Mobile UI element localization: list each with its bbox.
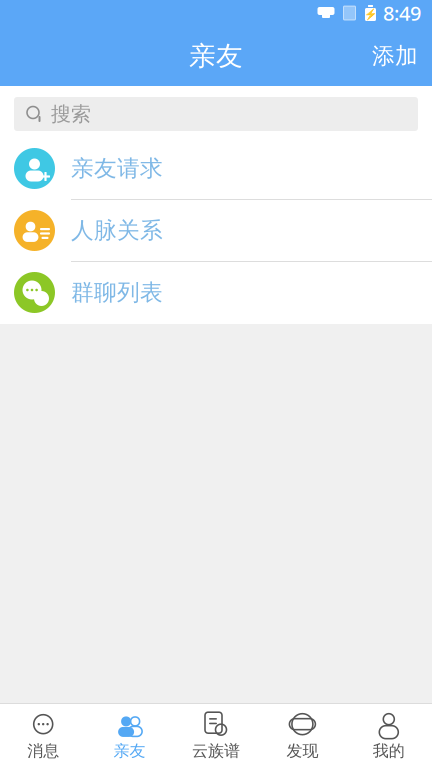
button[interactable]: 消息 — [0, 704, 86, 768]
staticText: 添加 — [372, 42, 418, 70]
staticText: 我的 — [373, 741, 405, 761]
button[interactable]: 我的 — [346, 704, 432, 768]
staticText: 亲友 — [114, 741, 146, 761]
staticText: 群聊列表 — [71, 279, 163, 306]
staticText: ⚡ — [364, 8, 377, 21]
button[interactable]: 人脉关系 — [0, 200, 432, 262]
staticText: 亲友请求 — [71, 155, 163, 182]
staticText: 发现 — [286, 741, 318, 761]
button[interactable]: 群聊列表 — [0, 262, 432, 324]
button[interactable]: 云族谱 — [173, 704, 259, 768]
button[interactable]: 亲友 — [86, 704, 173, 768]
staticText: 消息 — [27, 741, 59, 761]
staticText: 8:49 — [383, 0, 421, 26]
staticText: 云族谱 — [192, 741, 240, 761]
button[interactable]: 搜索 — [14, 97, 418, 131]
button[interactable]: 添加 — [358, 32, 432, 80]
staticText: 亲友 — [189, 40, 243, 72]
staticText: 搜索 — [51, 102, 91, 126]
button[interactable]: 亲友请求 — [0, 138, 432, 200]
button[interactable]: 发现 — [259, 704, 346, 768]
staticText: 人脉关系 — [71, 217, 163, 244]
